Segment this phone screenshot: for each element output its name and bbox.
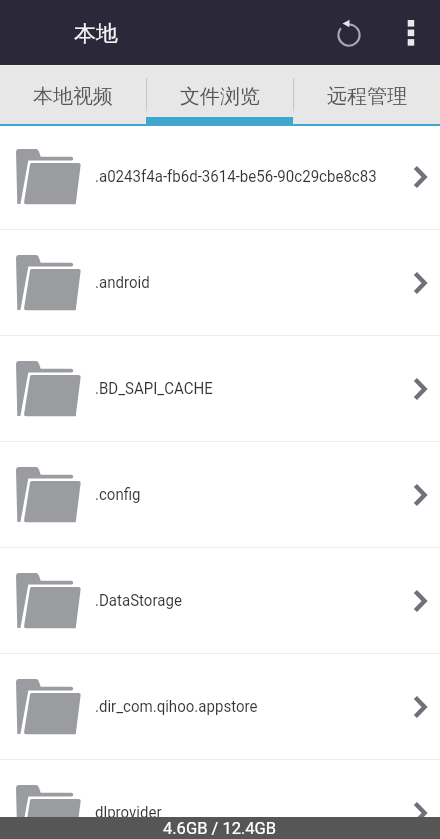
staticText: 本地 [74, 20, 118, 48]
button[interactable]: More options [389, 12, 433, 56]
staticText: .dir_com.qihoo.appstore [95, 697, 389, 716]
staticText: .config [95, 485, 389, 504]
staticText: 4.6GB / 12.4GB [163, 819, 277, 838]
staticText: .a0243f4a-fb6d-3614-be56-90c29cbe8c83 [95, 167, 389, 186]
button[interactable]: .a0243f4a-fb6d-3614-be56-90c29cbe8c83 [0, 126, 440, 229]
button[interactable]: .config [0, 442, 440, 547]
button[interactable]: dlprovider [0, 760, 440, 817]
button[interactable]: .dir_com.qihoo.appstore [0, 654, 440, 759]
button[interactable]: .DataStorage [0, 548, 440, 653]
staticText: 本地视频 [33, 84, 113, 109]
button[interactable]: Refresh [327, 12, 371, 56]
staticText: dlprovider [95, 803, 389, 817]
staticText: .android [95, 273, 389, 292]
button[interactable]: 本地视频 [0, 65, 146, 126]
staticText: .DataStorage [95, 591, 389, 610]
staticText: 远程管理 [327, 84, 407, 109]
staticText: .BD_SAPI_CACHE [95, 379, 389, 398]
button[interactable]: .BD_SAPI_CACHE [0, 336, 440, 441]
button[interactable]: 文件浏览 [146, 65, 293, 126]
button[interactable]: 远程管理 [293, 65, 440, 126]
staticText: 文件浏览 [180, 84, 260, 109]
button[interactable]: .android [0, 230, 440, 335]
